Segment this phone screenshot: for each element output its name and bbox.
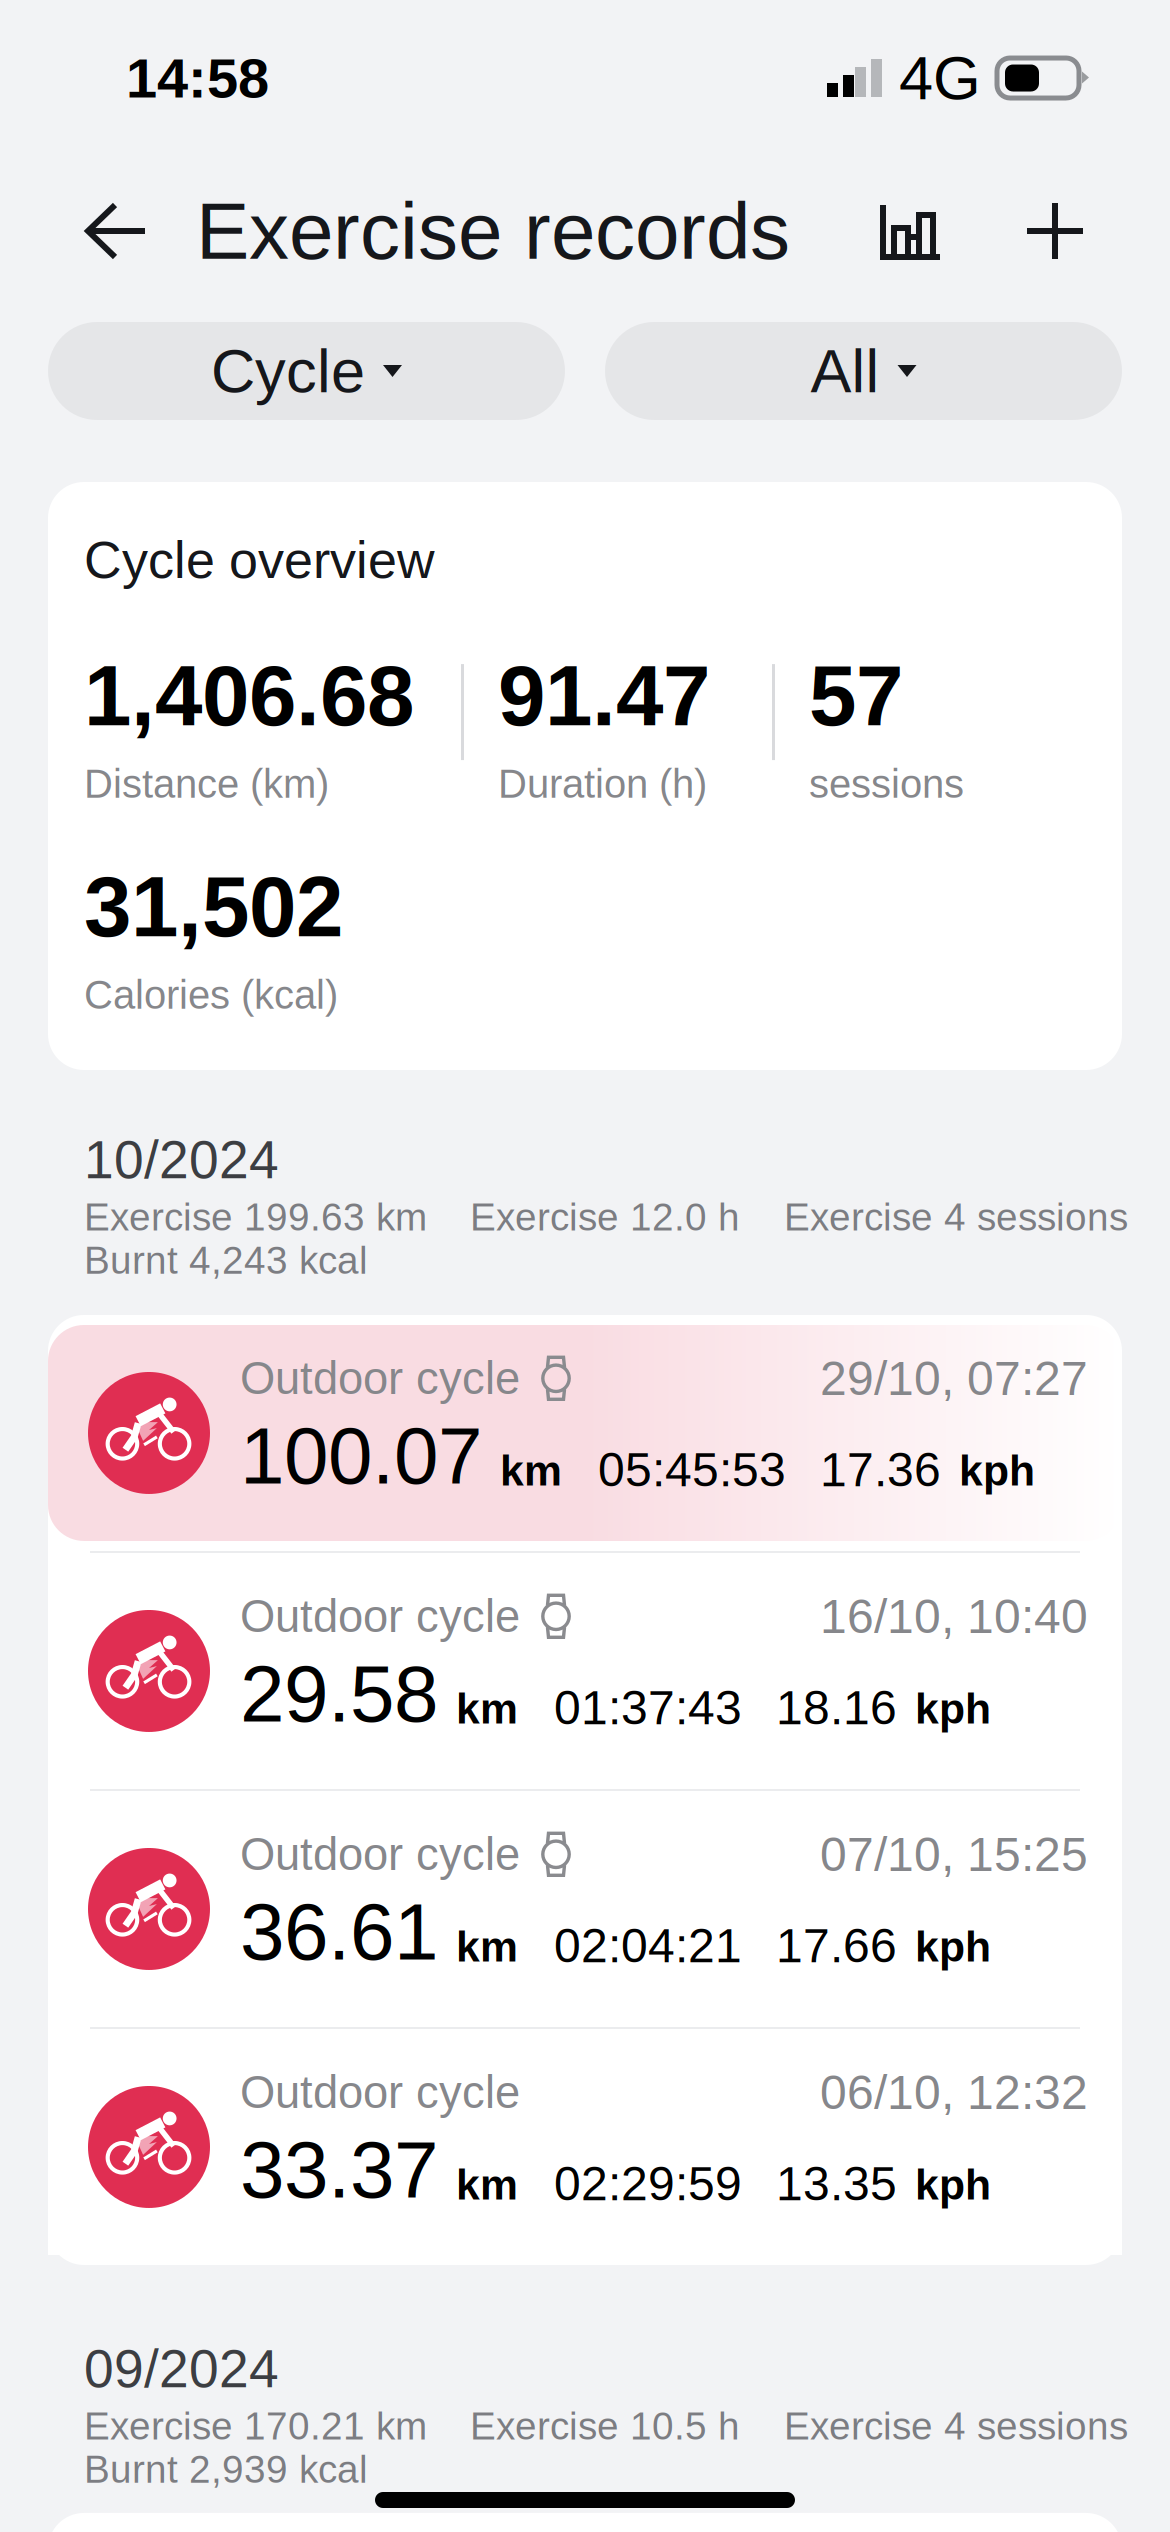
staticText: Distance (km) (84, 761, 329, 806)
staticText: Burnt 2,939 kcal (84, 2448, 368, 2491)
button[interactable]: All (605, 322, 1122, 420)
staticText: kph (915, 1685, 991, 1732)
staticText: Cycle (211, 337, 365, 405)
staticText: 02:29:59 (554, 2157, 742, 2210)
staticText: 31,502 (84, 859, 343, 954)
staticText: 1,406.68 (84, 648, 414, 743)
staticText: Burnt 4,243 kcal (84, 1239, 368, 1282)
staticText: 02:04:21 (554, 1919, 742, 1972)
staticText: Duration (h) (498, 761, 707, 806)
staticText: 05:45:53 (598, 1443, 786, 1496)
staticText: Outdoor cycle (240, 1591, 520, 1642)
staticText: Exercise records (196, 186, 790, 276)
staticText: 09/2024 (84, 2339, 279, 2399)
staticText: All (810, 337, 879, 405)
staticText: 17.36 (820, 1443, 941, 1496)
staticText: 06/10, 12:32 (820, 2065, 1088, 2119)
button[interactable]: Outdoor cycle (48, 2029, 1122, 2265)
staticText: Exercise 4 sessions (784, 1196, 1128, 1239)
staticText: 16/10, 10:40 (820, 1589, 1088, 1643)
button[interactable]: Add record (943, 178, 1170, 284)
staticText: km (456, 2161, 518, 2208)
staticText: 01:37:43 (554, 1681, 742, 1734)
button[interactable]: Cycle (48, 322, 565, 420)
staticText: 13.35 (776, 2157, 897, 2210)
staticText: 18.16 (776, 1681, 897, 1734)
staticText: Exercise 4 sessions (784, 2405, 1128, 2448)
staticText: 17.66 (776, 1919, 897, 1972)
button[interactable]: Outdoor cycle (48, 1315, 1122, 1551)
button[interactable]: Statistics (879, 176, 943, 286)
staticText: 29/10, 07:27 (820, 1351, 1088, 1405)
staticText: km (500, 1447, 562, 1494)
staticText: Cycle overview (84, 531, 435, 589)
staticText: kph (959, 1447, 1035, 1494)
staticText: 14:58 (126, 47, 269, 109)
staticText: Exercise 12.0 h (470, 1196, 740, 1239)
button[interactable]: Outdoor cycle (48, 1791, 1122, 2027)
staticText: 91.47 (498, 648, 710, 743)
staticText: sessions (809, 761, 964, 806)
staticText: 100.07 (240, 1411, 482, 1500)
staticText: 36.61 (240, 1887, 438, 1976)
staticText: kph (915, 1923, 991, 1970)
staticText: Outdoor cycle (240, 2067, 520, 2118)
staticText: Exercise 170.21 km (84, 2405, 427, 2448)
staticText: 10/2024 (84, 1130, 279, 1190)
button[interactable]: Back (59, 174, 196, 288)
staticText: Exercise 199.63 km (84, 1196, 427, 1239)
staticText: 4G (899, 44, 981, 112)
staticText: 07/10, 15:25 (820, 1827, 1088, 1881)
staticText: Exercise 10.5 h (470, 2405, 740, 2448)
button[interactable]: Outdoor cycle (48, 1553, 1122, 1789)
staticText: 57 (809, 648, 903, 743)
staticText: Outdoor cycle (240, 1353, 520, 1404)
staticText: kph (915, 2161, 991, 2208)
staticText: Outdoor cycle (240, 1829, 520, 1880)
staticText: km (456, 1923, 518, 1970)
staticText: 29.58 (240, 1649, 438, 1738)
staticText: 33.37 (240, 2125, 438, 2214)
staticText: Calories (kcal) (84, 972, 338, 1017)
staticText: km (456, 1685, 518, 1732)
